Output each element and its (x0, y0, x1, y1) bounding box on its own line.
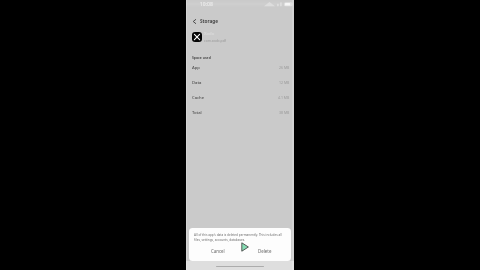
staticText: Data (192, 80, 202, 86)
staticText: Storage (200, 18, 219, 24)
staticText: Space used (192, 55, 211, 60)
staticText: 26 MB (279, 65, 290, 70)
staticText: Cancel (211, 248, 225, 254)
button[interactable]: Cancel (194, 247, 241, 255)
staticText: com.xodo.pdf (204, 38, 226, 43)
staticText: Total (192, 110, 202, 116)
staticText: 10:08 (200, 1, 213, 8)
staticText: 12 MB (279, 80, 290, 85)
staticText: Xodo (204, 31, 215, 37)
staticText: All of this app's data is deleted perman… (194, 233, 286, 242)
button[interactable]: Cache (186, 90, 294, 105)
button[interactable]: Total (186, 105, 294, 120)
button[interactable]: App (186, 60, 294, 75)
button[interactable]: Delete (241, 247, 288, 255)
staticText: Cache (192, 95, 205, 101)
button[interactable]: Back (189, 16, 199, 26)
staticText: App (192, 65, 200, 71)
button[interactable]: Data (186, 75, 294, 90)
staticText: 4.1 MB (278, 95, 290, 100)
staticText: 38 MB (279, 110, 290, 115)
staticText: Delete (258, 248, 272, 254)
